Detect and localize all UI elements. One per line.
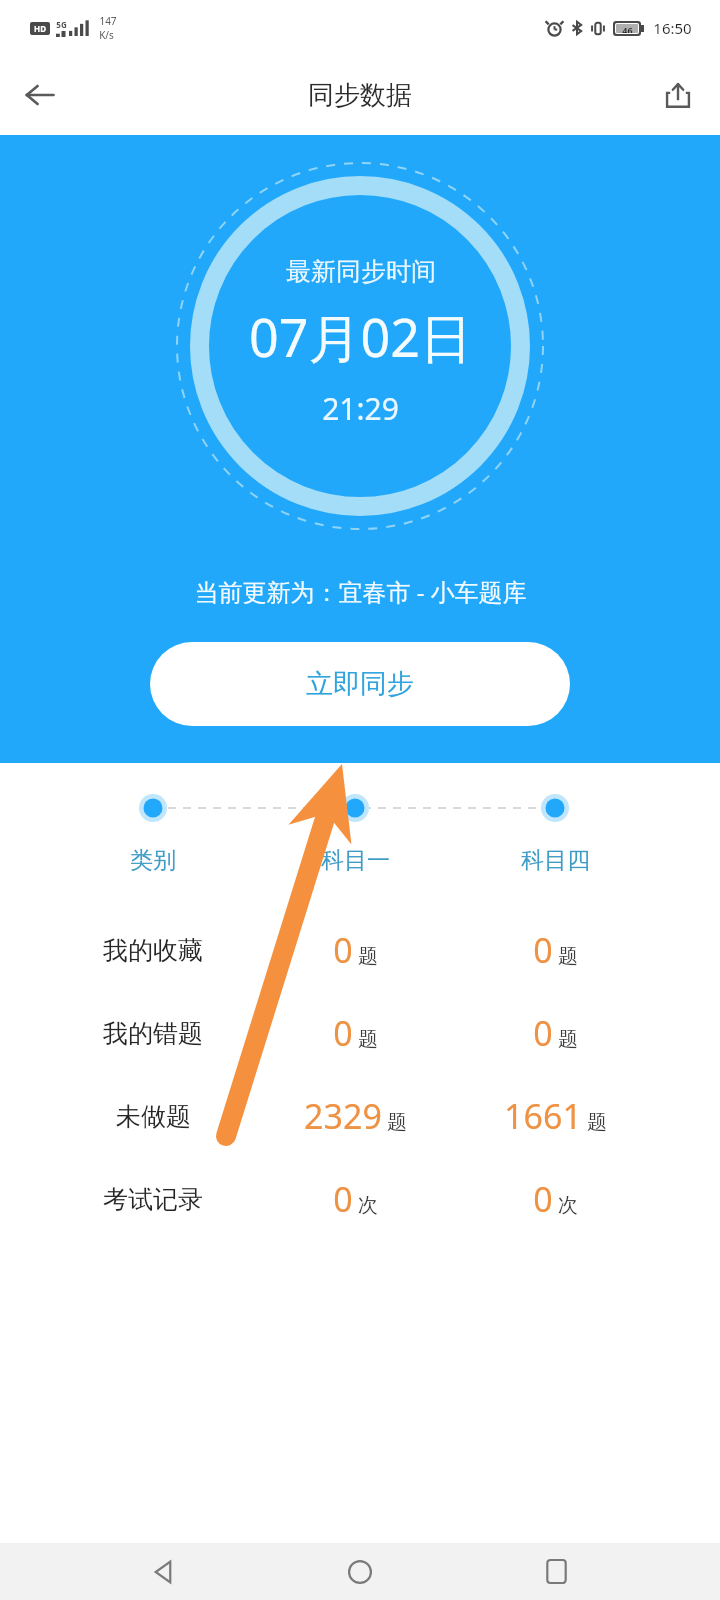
staticText: 0 (533, 927, 553, 973)
staticText: 题 (387, 1110, 407, 1135)
staticText: 0 (533, 1176, 553, 1222)
button[interactable]: Home (328, 1543, 392, 1600)
staticText: 题 (587, 1110, 607, 1135)
staticText: 我的收藏 (103, 935, 203, 966)
staticText: 科目一 (321, 846, 390, 875)
staticText: 1661 (504, 1093, 582, 1139)
staticText: 147 (99, 14, 117, 28)
staticText: 2329 (304, 1093, 382, 1139)
staticText: 题 (358, 944, 378, 969)
button[interactable]: Share (650, 67, 706, 123)
staticText: 最新同步时间 (286, 256, 436, 287)
staticText: 立即同步 (306, 667, 414, 701)
staticText: 未做题 (116, 1101, 191, 1132)
staticText: 类别 (130, 846, 176, 875)
staticText: 07月02日 (249, 301, 472, 372)
staticText: 次 (558, 1193, 578, 1218)
staticText: 0 (333, 1010, 353, 1056)
staticText: 我的错题 (103, 1018, 203, 1049)
button[interactable]: 立即同步 (150, 642, 570, 726)
staticText: 题 (358, 1027, 378, 1052)
staticText: 当前更新为：宜春市 - 小车题库 (194, 575, 527, 608)
staticText: 21:29 (322, 388, 399, 429)
staticText: 同步数据 (308, 79, 412, 112)
staticText: 科目四 (521, 846, 590, 875)
staticText: HD (34, 23, 46, 34)
staticText: 0 (533, 1010, 553, 1056)
staticText: 次 (358, 1193, 378, 1218)
staticText: 0 (333, 927, 353, 973)
button[interactable]: Back (132, 1543, 196, 1600)
staticText: 5G (56, 19, 67, 30)
staticText: 0 (333, 1176, 353, 1222)
staticText: 16:50 (653, 18, 692, 38)
staticText: 46 (622, 24, 633, 33)
button[interactable]: Recent apps (524, 1543, 588, 1600)
staticText: 考试记录 (103, 1184, 203, 1215)
staticText: 题 (558, 944, 578, 969)
button[interactable]: Back (12, 67, 68, 123)
staticText: 题 (558, 1027, 578, 1052)
staticText: K/s (99, 28, 114, 42)
